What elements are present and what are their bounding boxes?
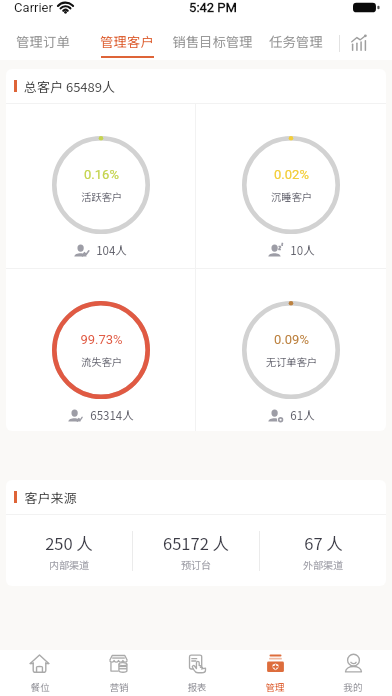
staticText: 管理订单 [16, 31, 70, 50]
staticText: 104人 [96, 242, 127, 259]
staticText: 管理 [265, 680, 285, 694]
button[interactable]: 任务管理 [256, 26, 336, 60]
staticText: 0.16% [84, 167, 119, 182]
staticText: 65314人 [90, 407, 134, 424]
staticText: 67 人 [304, 531, 343, 555]
button[interactable]: Analytics chart [340, 26, 392, 60]
staticText: 0.09% [274, 332, 309, 347]
button[interactable]: 我的 [314, 650, 392, 696]
staticText: 99.73% [80, 332, 123, 347]
staticText: 流失客户 [81, 354, 122, 369]
button[interactable]: 管理订单 [0, 26, 86, 60]
button[interactable]: 0.02% [196, 104, 386, 268]
staticText: 0.02% [274, 167, 309, 182]
button[interactable]: 营销 [79, 650, 158, 696]
staticText: 活跃客户 [81, 189, 122, 204]
button[interactable]: 管理客户 [86, 26, 168, 60]
staticText: 管理客户 [100, 31, 154, 50]
staticText: 内部渠道 [49, 557, 89, 571]
staticText: 10人 [290, 242, 315, 259]
staticText: 250 人 [45, 531, 93, 555]
staticText: 无订单客户 [266, 354, 317, 369]
button[interactable]: 销售目标管理 [168, 26, 256, 60]
staticText: 5:42 PM [189, 0, 237, 15]
button[interactable]: 管理 [236, 650, 314, 696]
button[interactable]: 餐位 [0, 650, 79, 696]
button[interactable]: 0.16% [6, 104, 195, 268]
staticText: 销售目标管理 [172, 31, 253, 50]
button[interactable]: 65172 人 [133, 531, 259, 571]
button[interactable]: 99.73% [6, 269, 195, 431]
staticText: 营销 [109, 680, 129, 694]
staticText: 客户来源 [24, 488, 77, 507]
button[interactable]: 0.09% [196, 269, 386, 431]
staticText: 任务管理 [269, 31, 323, 50]
staticText: 外部渠道 [303, 557, 343, 571]
staticText: 我的 [343, 680, 363, 694]
button[interactable]: 67 人 [260, 531, 386, 571]
staticText: 餐位 [30, 680, 50, 694]
button[interactable]: 报表 [158, 650, 236, 696]
staticText: 报表 [187, 680, 207, 694]
staticText: 总客户 65489人 [24, 77, 115, 96]
staticText: 65172 人 [163, 531, 229, 555]
staticText: 61人 [290, 407, 315, 424]
staticText: Carrier [14, 0, 53, 15]
button[interactable]: 250 人 [6, 531, 132, 571]
staticText: 沉睡客户 [271, 189, 312, 204]
staticText: 预订台 [181, 557, 211, 571]
